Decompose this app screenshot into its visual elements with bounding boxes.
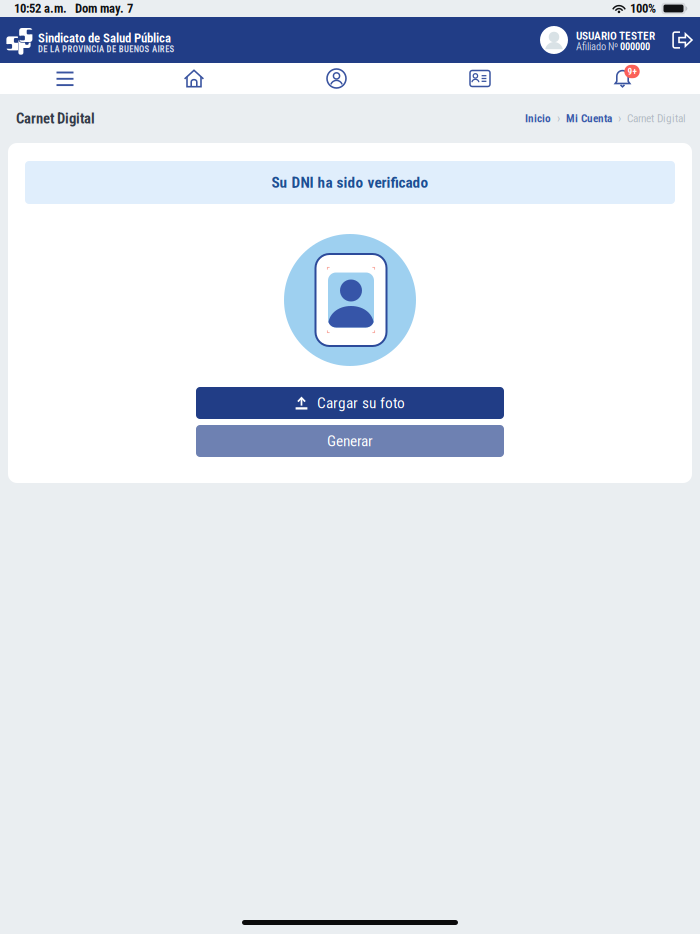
staticText: Carnet Digital: [16, 110, 95, 127]
staticText: Afiliado Nº: [576, 40, 620, 53]
staticText: ›: [618, 111, 621, 126]
staticText: Generar: [327, 432, 373, 450]
button[interactable]: Notificaciones: [545, 63, 700, 94]
button[interactable]: Mi Cuenta: [566, 112, 612, 125]
staticText: 000000: [620, 40, 650, 53]
staticText: Sindicato de Salud Pública: [38, 31, 171, 46]
button[interactable]: Menú: [0, 63, 130, 94]
staticText: Mi Cuenta: [566, 112, 612, 125]
button[interactable]: Inicio: [130, 63, 258, 94]
staticText: Cargar su foto: [317, 394, 405, 412]
button[interactable]: Mi cuenta: [258, 63, 415, 94]
staticText: Su DNI ha sido verificado: [271, 173, 428, 191]
staticText: 100%: [630, 1, 656, 16]
button[interactable]: Inicio: [525, 112, 551, 125]
staticText: Inicio: [525, 112, 551, 125]
staticText: DE LA PROVINCIA DE BUENOS AIRES: [38, 44, 174, 54]
button[interactable]: Cerrar sesión: [655, 31, 698, 49]
staticText: 9+: [627, 66, 636, 77]
staticText: Carnet Digital: [627, 112, 686, 125]
button[interactable]: Cargar su foto: [196, 387, 504, 419]
staticText: ›: [557, 111, 560, 126]
staticText: USUARIO TESTER: [576, 29, 655, 43]
staticText: Dom may. 7: [75, 1, 133, 16]
button[interactable]: Generar: [196, 425, 504, 457]
button[interactable]: Carnet digital: [415, 63, 545, 94]
staticText: 10:52 a.m.: [14, 1, 67, 16]
